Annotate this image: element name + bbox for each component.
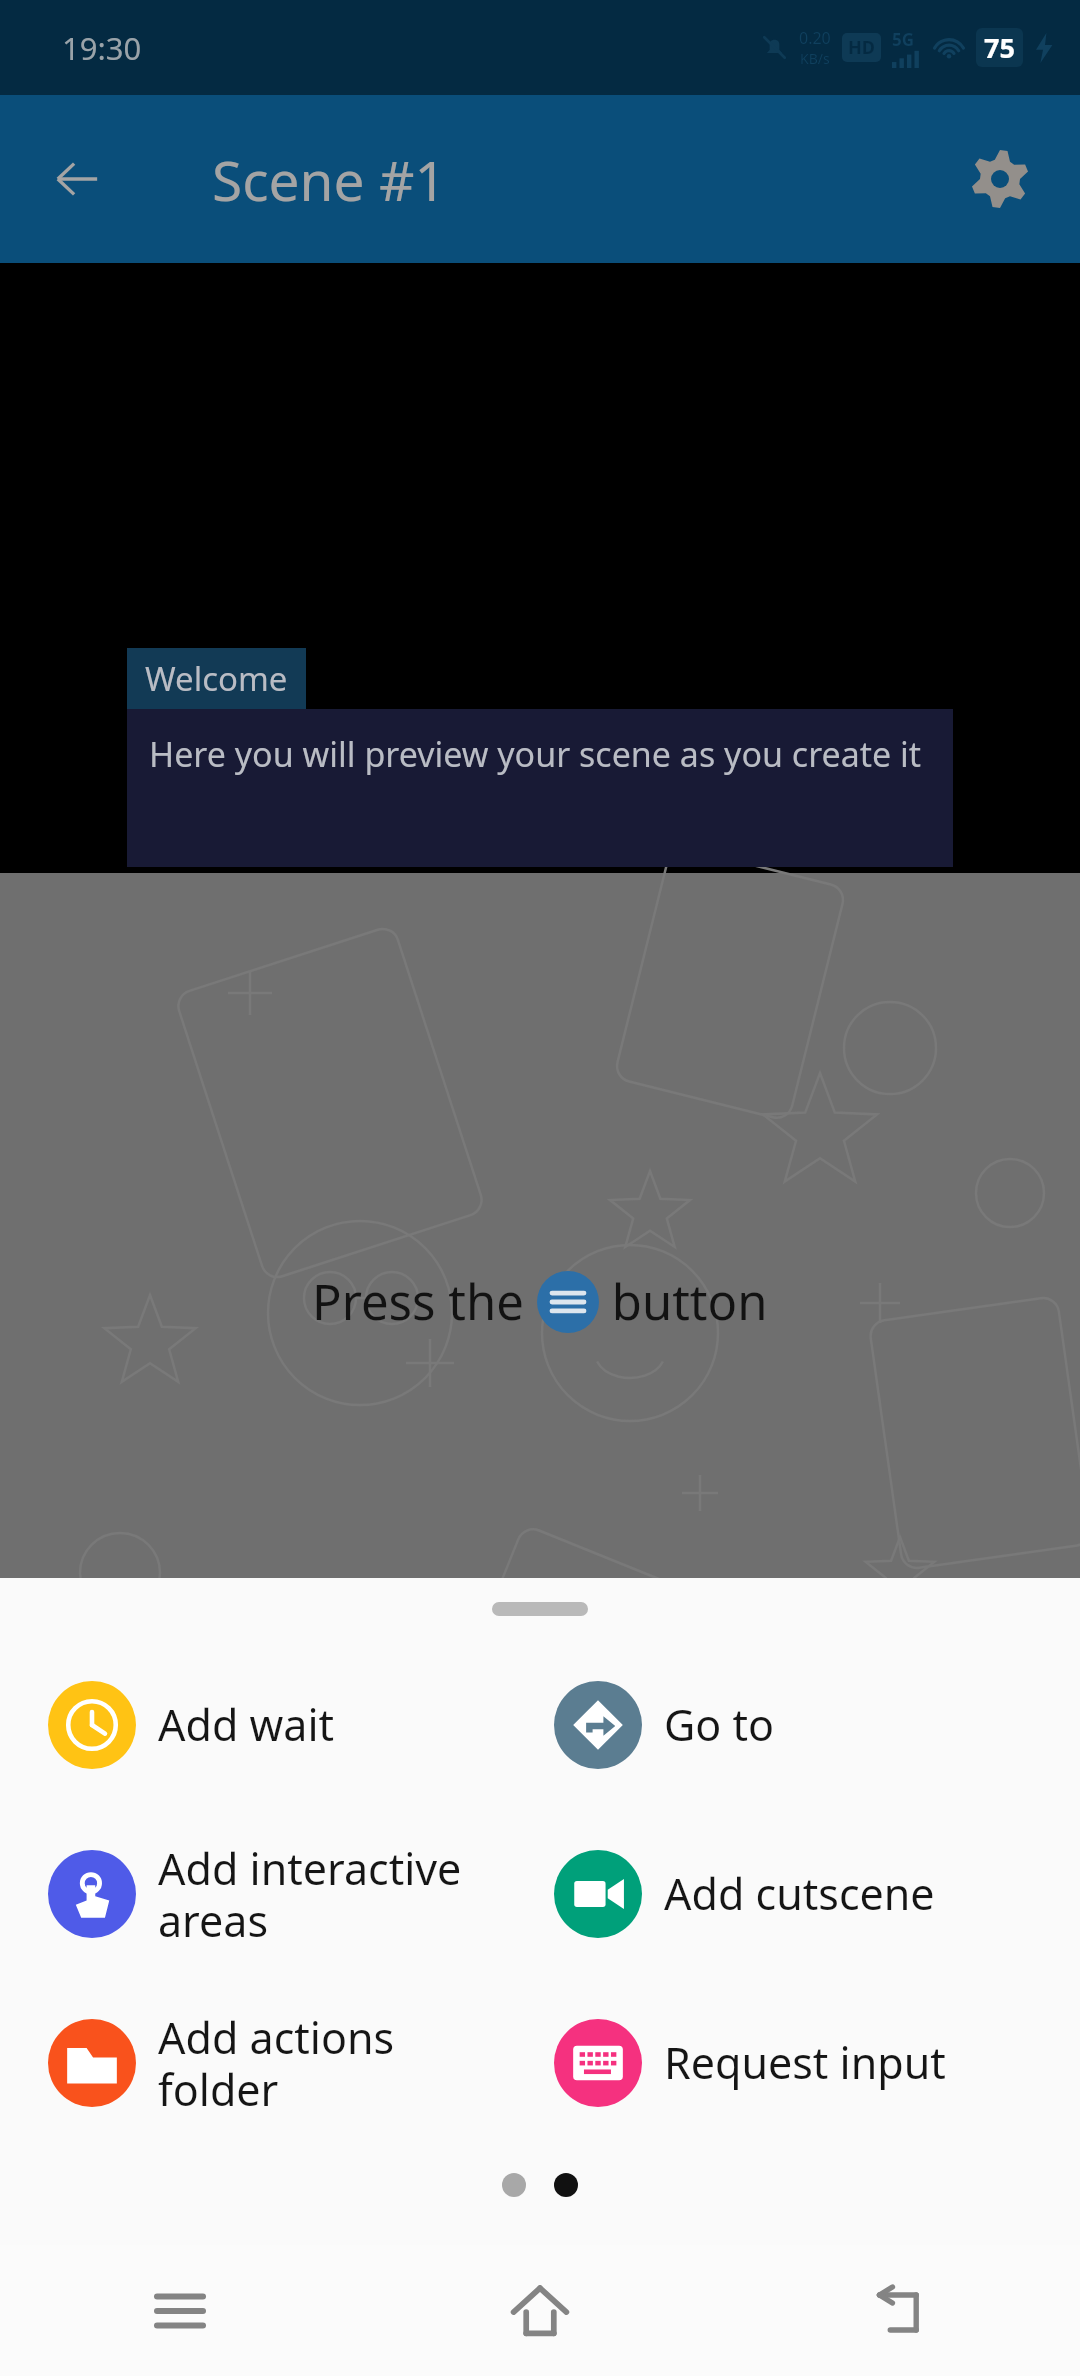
- button[interactable]: Add cutscene: [540, 1809, 1080, 1978]
- button[interactable]: Add interactive areas: [0, 1809, 540, 1978]
- button[interactable]: Request input: [540, 1978, 1080, 2147]
- button[interactable]: Add wait: [0, 1640, 540, 1809]
- staticText: Add cutscene: [664, 1864, 935, 1923]
- button[interactable]: Back: [36, 138, 118, 220]
- button[interactable]: Add actions folder: [0, 1978, 540, 2147]
- staticText: Request input: [664, 2033, 946, 2092]
- staticText: 19:30: [62, 27, 142, 69]
- button[interactable]: Back: [720, 2245, 1080, 2376]
- staticText: Here you will preview your scene as you …: [149, 731, 922, 777]
- staticText: Go to: [664, 1695, 775, 1754]
- staticText: Add actions folder: [158, 2008, 395, 2118]
- staticText: HD: [848, 35, 875, 60]
- staticText: Add wait: [158, 1695, 335, 1754]
- staticText: button: [599, 1268, 768, 1335]
- staticText: Press the: [312, 1268, 537, 1335]
- button[interactable]: Home: [360, 2245, 720, 2376]
- staticText: Scene #1: [212, 142, 446, 217]
- staticText: 75: [984, 29, 1015, 66]
- staticText: Add interactive areas: [158, 1839, 462, 1949]
- staticText: 5G: [892, 28, 915, 51]
- staticText: KB/s: [800, 49, 830, 68]
- button[interactable]: Settings: [956, 135, 1044, 223]
- button[interactable]: Recents: [0, 2245, 360, 2376]
- staticText: Welcome: [145, 656, 288, 701]
- button[interactable]: Menu: [537, 1271, 599, 1333]
- staticText: 0.20: [799, 27, 831, 49]
- button[interactable]: Go to: [540, 1640, 1080, 1809]
